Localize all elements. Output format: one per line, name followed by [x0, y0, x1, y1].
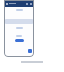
button[interactable]	[15, 39, 24, 42]
button[interactable]	[16, 27, 23, 29]
button[interactable]	[16, 9, 23, 11]
button[interactable]: Add	[28, 49, 32, 53]
button[interactable]: Menu	[4, 0, 34, 7]
button[interactable]	[16, 35, 22, 37]
